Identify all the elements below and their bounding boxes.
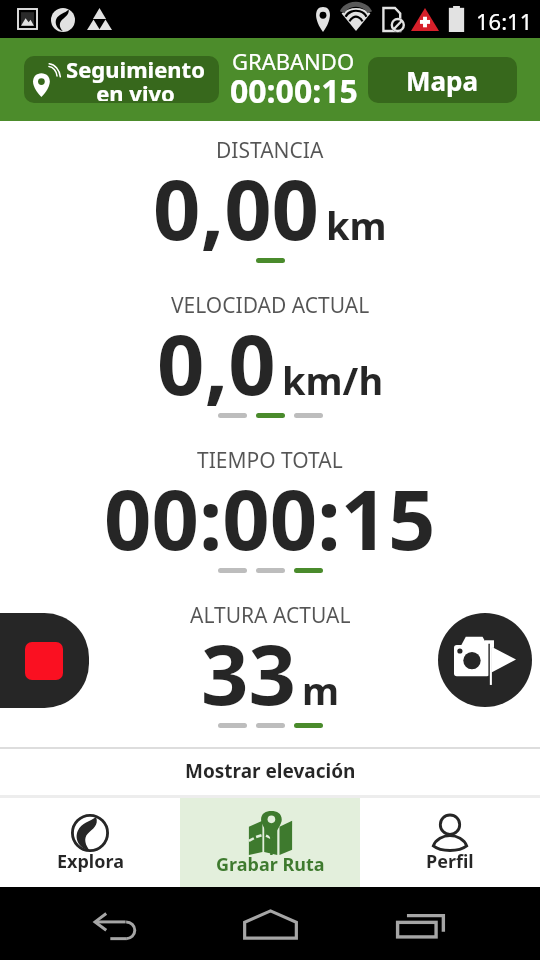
button[interactable]: Perfil (360, 798, 540, 887)
staticText: VELOCIDAD ACTUAL (171, 291, 370, 320)
staticText: Grabar Ruta (216, 852, 325, 877)
staticText: Perfil (426, 849, 474, 874)
button[interactable]: Grabar Ruta (180, 798, 360, 887)
button[interactable]: Mapa (368, 57, 517, 103)
staticText: Explora (57, 849, 124, 874)
button[interactable]: Seguimiento en vivo (24, 56, 219, 103)
staticText: 16:11 (476, 6, 533, 36)
staticText: m (302, 664, 340, 716)
staticText: TIEMPO TOTAL (197, 446, 343, 475)
staticText: Mostrar elevación (185, 758, 356, 784)
staticText: 33 (201, 616, 296, 729)
staticText: GRABANDO (232, 46, 355, 76)
button[interactable]: Recientes (395, 913, 447, 939)
button[interactable]: Inicio (243, 910, 298, 939)
staticText: 00:00:15 (104, 461, 436, 574)
button[interactable]: Tomar foto (438, 613, 532, 707)
button[interactable]: Mostrar elevación (0, 749, 540, 795)
staticText: 00:00:15 (230, 69, 358, 113)
staticText: Seguimiento en vivo (66, 56, 205, 101)
staticText: 0,0 (157, 306, 276, 419)
button[interactable]: Detener grabación (0, 613, 89, 708)
staticText: km (326, 199, 387, 251)
button[interactable]: Explora (0, 798, 180, 887)
staticText: km/h (282, 354, 384, 406)
staticText: DISTANCIA (216, 136, 324, 165)
staticText: Mapa (406, 63, 479, 98)
button[interactable]: Atrás (94, 913, 145, 940)
staticText: ALTURA ACTUAL (190, 601, 351, 630)
staticText: 0,00 (153, 151, 320, 264)
